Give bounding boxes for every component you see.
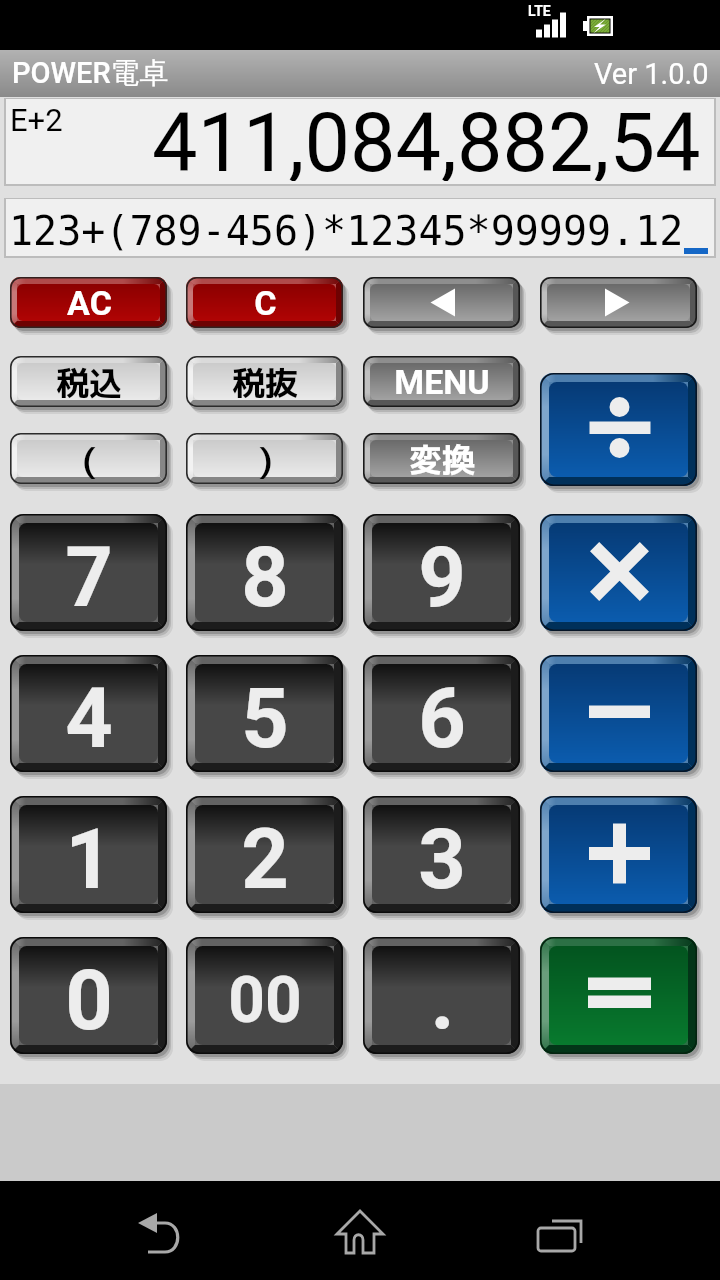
button[interactable]: C [186, 277, 348, 334]
staticText: 411,084,882,54 [152, 96, 701, 181]
staticText: 8 [241, 529, 289, 626]
button[interactable]: Plus [540, 796, 702, 919]
button[interactable]: 8 [186, 514, 348, 637]
button[interactable]: ( [10, 433, 172, 490]
button[interactable]: Cursor left [363, 277, 525, 334]
button[interactable]: 5 [186, 655, 348, 778]
staticText: . [430, 952, 455, 1049]
staticText: 税込 [56, 360, 122, 406]
staticText: 7 [65, 529, 113, 626]
button[interactable]: 00 [186, 937, 348, 1060]
button[interactable]: Back [110, 1190, 210, 1280]
staticText: E+2 [10, 102, 63, 138]
button[interactable]: Minus [540, 655, 702, 778]
staticText: 4 [65, 670, 113, 767]
staticText: POWER電卓 [12, 55, 169, 92]
staticText: ) [258, 436, 273, 483]
button[interactable]: Multiply [540, 514, 702, 637]
staticText: 123+(789-456)*12345*99999.12 [9, 208, 684, 255]
staticText: 6 [418, 670, 466, 767]
staticText: LTE [528, 3, 551, 19]
staticText: 変換 [409, 437, 475, 483]
button[interactable]: Cursor right [540, 277, 702, 334]
staticText: Ver 1.0.0 [594, 57, 709, 91]
button[interactable]: 1 [10, 796, 172, 919]
button[interactable]: 6 [363, 655, 525, 778]
button[interactable]: Divide [540, 373, 702, 492]
button[interactable]: 税抜 [186, 356, 348, 413]
button[interactable]: ) [186, 433, 348, 490]
staticText: AC [67, 283, 112, 323]
staticText: MENU [394, 362, 490, 402]
staticText: 5 [241, 670, 289, 767]
staticText: 3 [418, 811, 466, 908]
button[interactable]: 3 [363, 796, 525, 919]
button[interactable]: 税込 [10, 356, 172, 413]
button[interactable]: AC [10, 277, 172, 334]
staticText: 2 [241, 811, 289, 908]
button[interactable]: 4 [10, 655, 172, 778]
staticText: ( [82, 436, 97, 483]
button[interactable]: 2 [186, 796, 348, 919]
button[interactable]: 9 [363, 514, 525, 637]
staticText: C [254, 283, 277, 323]
staticText: 1 [65, 811, 113, 908]
staticText: 9 [418, 529, 466, 626]
button[interactable]: MENU [363, 356, 525, 413]
button[interactable]: . [363, 937, 525, 1060]
staticText: 税抜 [232, 360, 298, 406]
button[interactable]: 0 [10, 937, 172, 1060]
staticText: 0 [65, 952, 113, 1049]
button[interactable]: 変換 [363, 433, 525, 490]
button[interactable]: Home [310, 1190, 410, 1280]
button[interactable]: Recents [510, 1190, 610, 1280]
button[interactable]: 7 [10, 514, 172, 637]
button[interactable]: Equals [540, 937, 702, 1060]
staticText: 00 [228, 963, 302, 1038]
